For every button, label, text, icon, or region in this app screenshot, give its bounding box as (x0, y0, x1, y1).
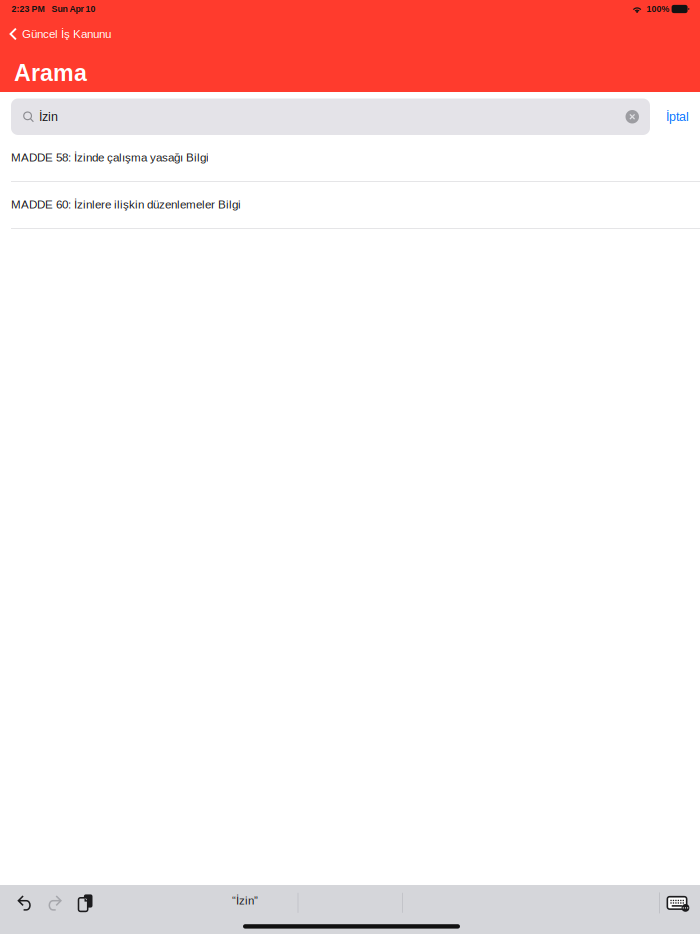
staticText: MADDE 58: İzinde çalışma yasağı Bilgi (11, 151, 209, 164)
button[interactable]: Redo (44, 891, 67, 915)
staticText: İptal (666, 110, 689, 124)
button[interactable]: MADDE 58: İzinde çalışma yasağı Bilgi (0, 135, 700, 182)
button[interactable]: “İzin” (191, 887, 299, 915)
button[interactable]: Güncel İş Kanunu (0, 23, 121, 45)
button[interactable]: İptal (660, 104, 695, 130)
staticText: Arama (14, 60, 87, 86)
button[interactable]: Paste (73, 889, 98, 916)
button[interactable]: Undo (12, 891, 36, 915)
staticText: MADDE 60: İzinlere ilişkin düzenlemeler … (11, 198, 241, 211)
staticText: 2:23 PM (11, 4, 44, 14)
button[interactable]: MADDE 60: İzinlere ilişkin düzenlemeler … (0, 182, 700, 229)
staticText: “İzin” (232, 894, 258, 907)
staticText: Güncel İş Kanunu (22, 27, 111, 40)
staticText: Sun Apr 10 (51, 4, 95, 14)
button[interactable]: Hide keyboard (662, 891, 692, 914)
button[interactable]: Clear text (623, 108, 641, 125)
staticText: 100% (647, 4, 670, 14)
staticText: İzin (39, 110, 58, 124)
